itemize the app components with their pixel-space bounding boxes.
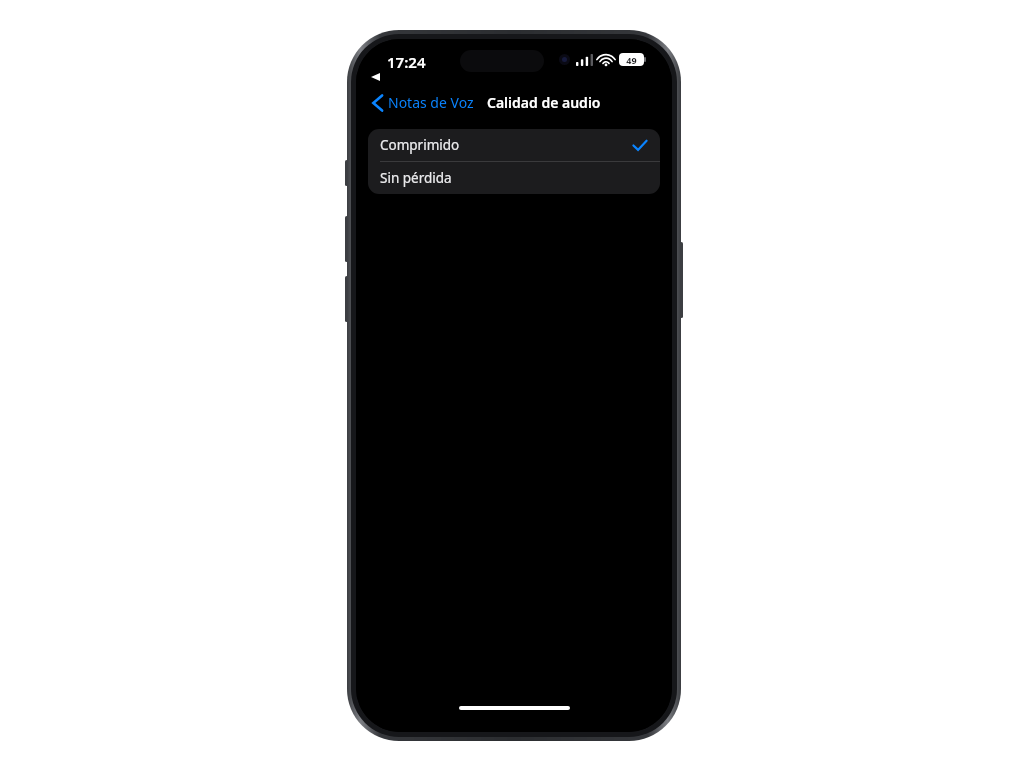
button[interactable]: Sin pérdida (368, 162, 660, 194)
button[interactable]: Comprimido (368, 129, 660, 161)
staticText: Notas de Voz (388, 93, 474, 112)
button[interactable]: Back to Notas de Voz (368, 90, 478, 115)
staticText: Sin pérdida (380, 169, 452, 187)
staticText: 17:24 (387, 52, 426, 72)
staticText: Comprimido (380, 136, 460, 154)
staticText: Calidad de audio (487, 93, 601, 112)
staticText: 49 (626, 54, 637, 66)
